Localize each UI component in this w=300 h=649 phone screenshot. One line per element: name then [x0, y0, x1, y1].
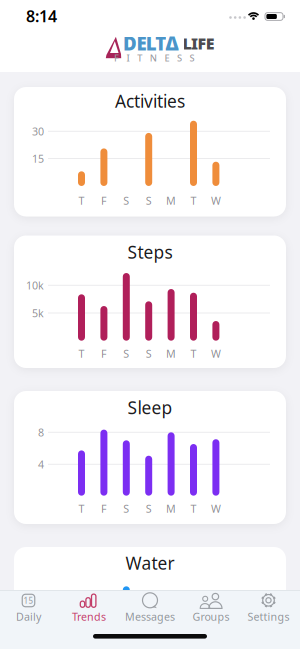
staticText: S — [123, 346, 129, 361]
staticText: S — [123, 501, 129, 516]
staticText: T — [78, 193, 84, 208]
staticText: 30 — [32, 124, 44, 138]
staticText: S — [146, 501, 152, 516]
button[interactable]: Trends — [59, 590, 119, 636]
staticText: M — [166, 346, 176, 361]
staticText: Water — [125, 551, 174, 574]
staticText: Activities — [115, 89, 185, 112]
staticText: Trends — [72, 609, 106, 624]
staticText: T — [190, 346, 196, 361]
button[interactable]: Settings — [238, 590, 298, 636]
staticText: M — [166, 501, 176, 516]
staticText: W — [211, 346, 221, 361]
staticText: T — [78, 346, 84, 361]
staticText: Steps — [127, 240, 172, 263]
staticText: Messages — [125, 609, 175, 624]
staticText: 8:14 — [26, 5, 57, 27]
staticText: S — [123, 193, 129, 208]
staticText: F — [101, 346, 107, 361]
staticText: 10k — [26, 278, 44, 292]
staticText: T — [190, 193, 196, 208]
staticText: S — [146, 193, 152, 208]
staticText: LIFE — [183, 33, 215, 54]
staticText: W — [211, 193, 221, 208]
staticText: 15 — [23, 595, 33, 606]
button[interactable]: Messages — [120, 590, 180, 636]
staticText: M — [166, 193, 176, 208]
button[interactable]: Groups — [181, 590, 241, 636]
staticText: 5k — [32, 306, 44, 320]
staticText: DELTΔ — [123, 31, 179, 56]
staticText: 8 — [38, 425, 44, 439]
staticText: 4 — [38, 457, 44, 471]
staticText: Settings — [247, 609, 289, 624]
staticText: Sleep — [127, 396, 172, 419]
staticText: F — [101, 501, 107, 516]
staticText: F — [101, 193, 107, 208]
staticText: W — [211, 501, 221, 516]
staticText: FITNESS — [114, 52, 195, 64]
staticText: S — [146, 346, 152, 361]
button[interactable]: 15 — [0, 590, 58, 636]
staticText: T — [78, 501, 84, 516]
staticText: 15 — [32, 151, 44, 166]
staticText: Daily — [16, 609, 41, 624]
staticText: Groups — [192, 609, 229, 624]
staticText: T — [190, 501, 196, 516]
